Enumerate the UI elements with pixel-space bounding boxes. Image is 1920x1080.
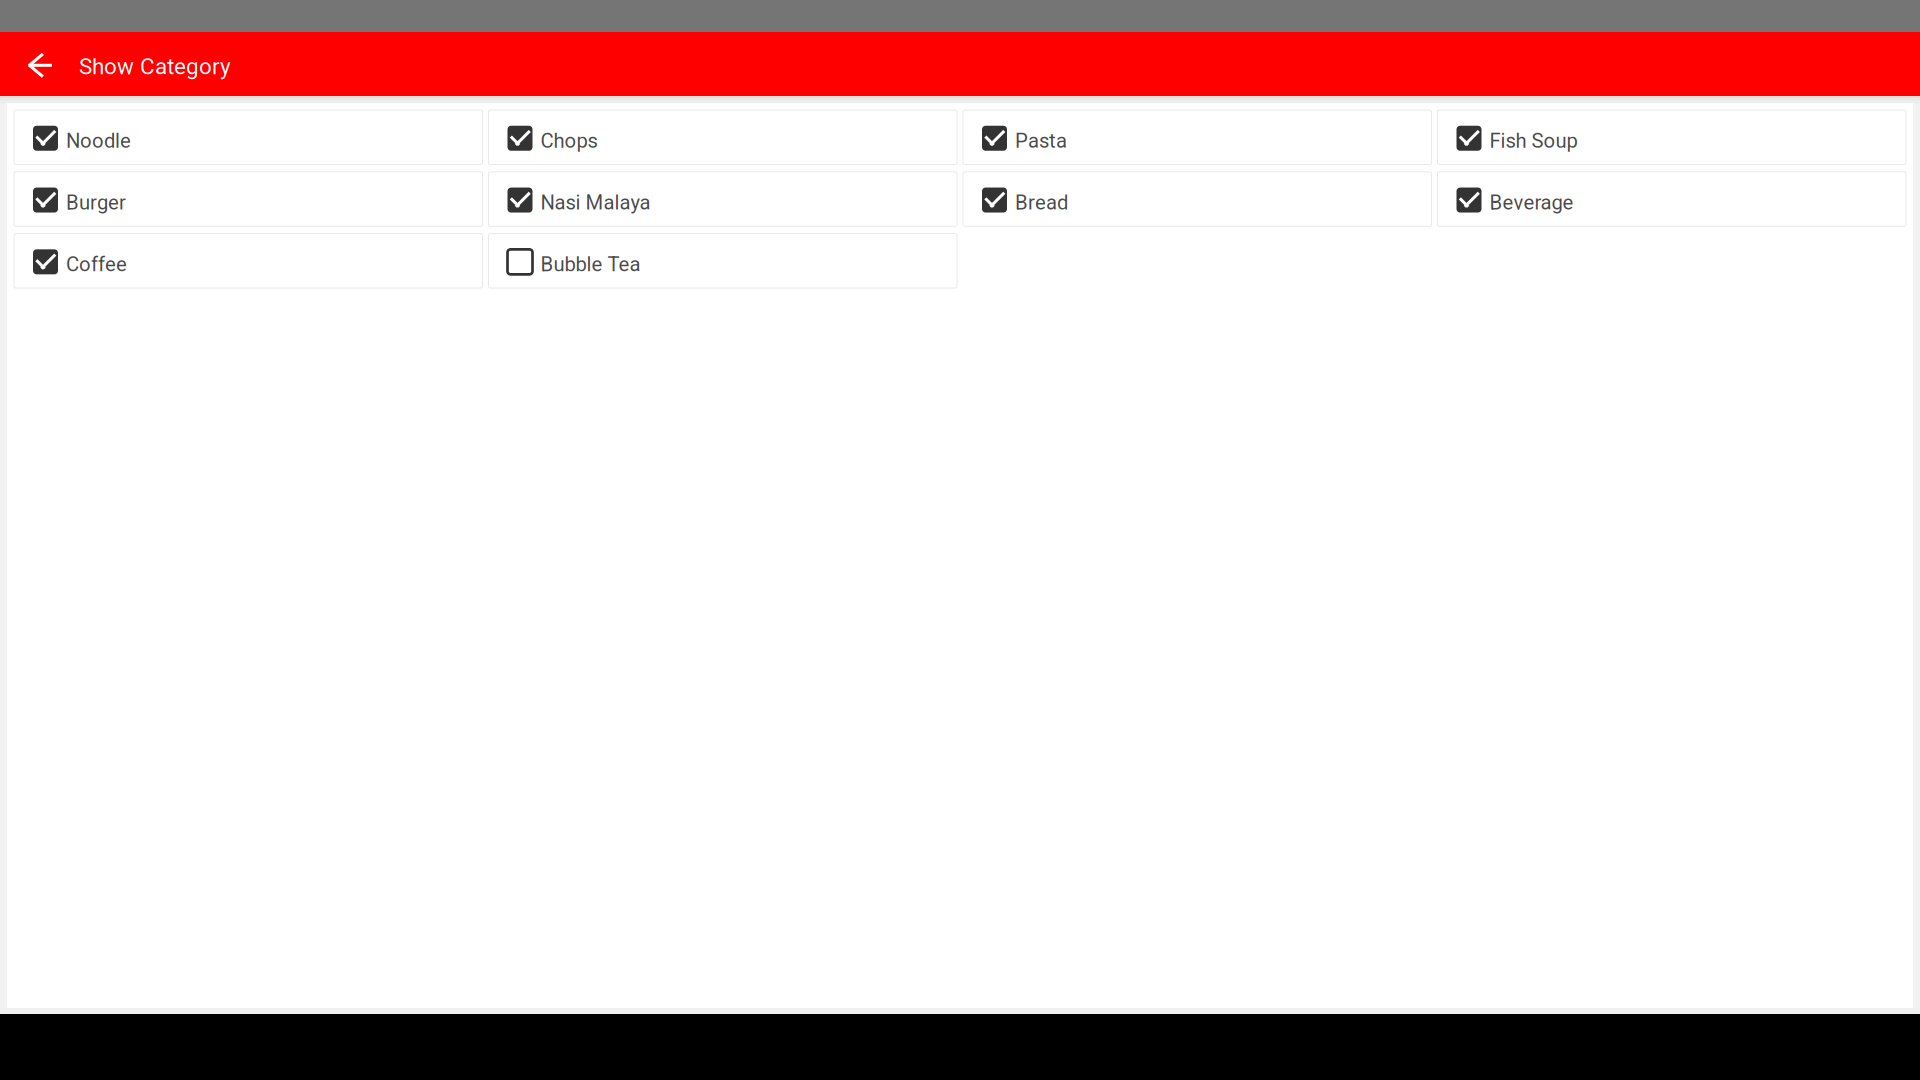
button[interactable]: Fish Soup xyxy=(1437,110,1906,164)
button[interactable]: Burger xyxy=(14,172,482,226)
button[interactable]: Noodle xyxy=(14,110,482,164)
staticText: Burger xyxy=(66,191,126,214)
button[interactable]: Nasi Malaya xyxy=(488,172,957,226)
staticText: Noodle xyxy=(66,129,131,153)
button[interactable]: Chops xyxy=(488,110,957,164)
staticText: Beverage xyxy=(1489,191,1573,214)
staticText: Chops xyxy=(540,129,597,153)
button[interactable]: Coffee xyxy=(14,234,482,288)
button[interactable]: Beverage xyxy=(1437,172,1906,226)
staticText: Nasi Malaya xyxy=(540,191,650,214)
staticText: Bread xyxy=(1015,191,1068,214)
button[interactable]: Bread xyxy=(963,172,1431,226)
staticText: Bubble Tea xyxy=(540,252,640,276)
button[interactable]: Pasta xyxy=(963,110,1431,164)
staticText: Fish Soup xyxy=(1489,129,1577,153)
button[interactable]: Back xyxy=(0,32,52,96)
staticText: Coffee xyxy=(66,252,127,276)
staticText: Show Category xyxy=(79,53,231,80)
staticText: Pasta xyxy=(1015,129,1067,153)
button[interactable]: Bubble Tea xyxy=(488,234,957,288)
